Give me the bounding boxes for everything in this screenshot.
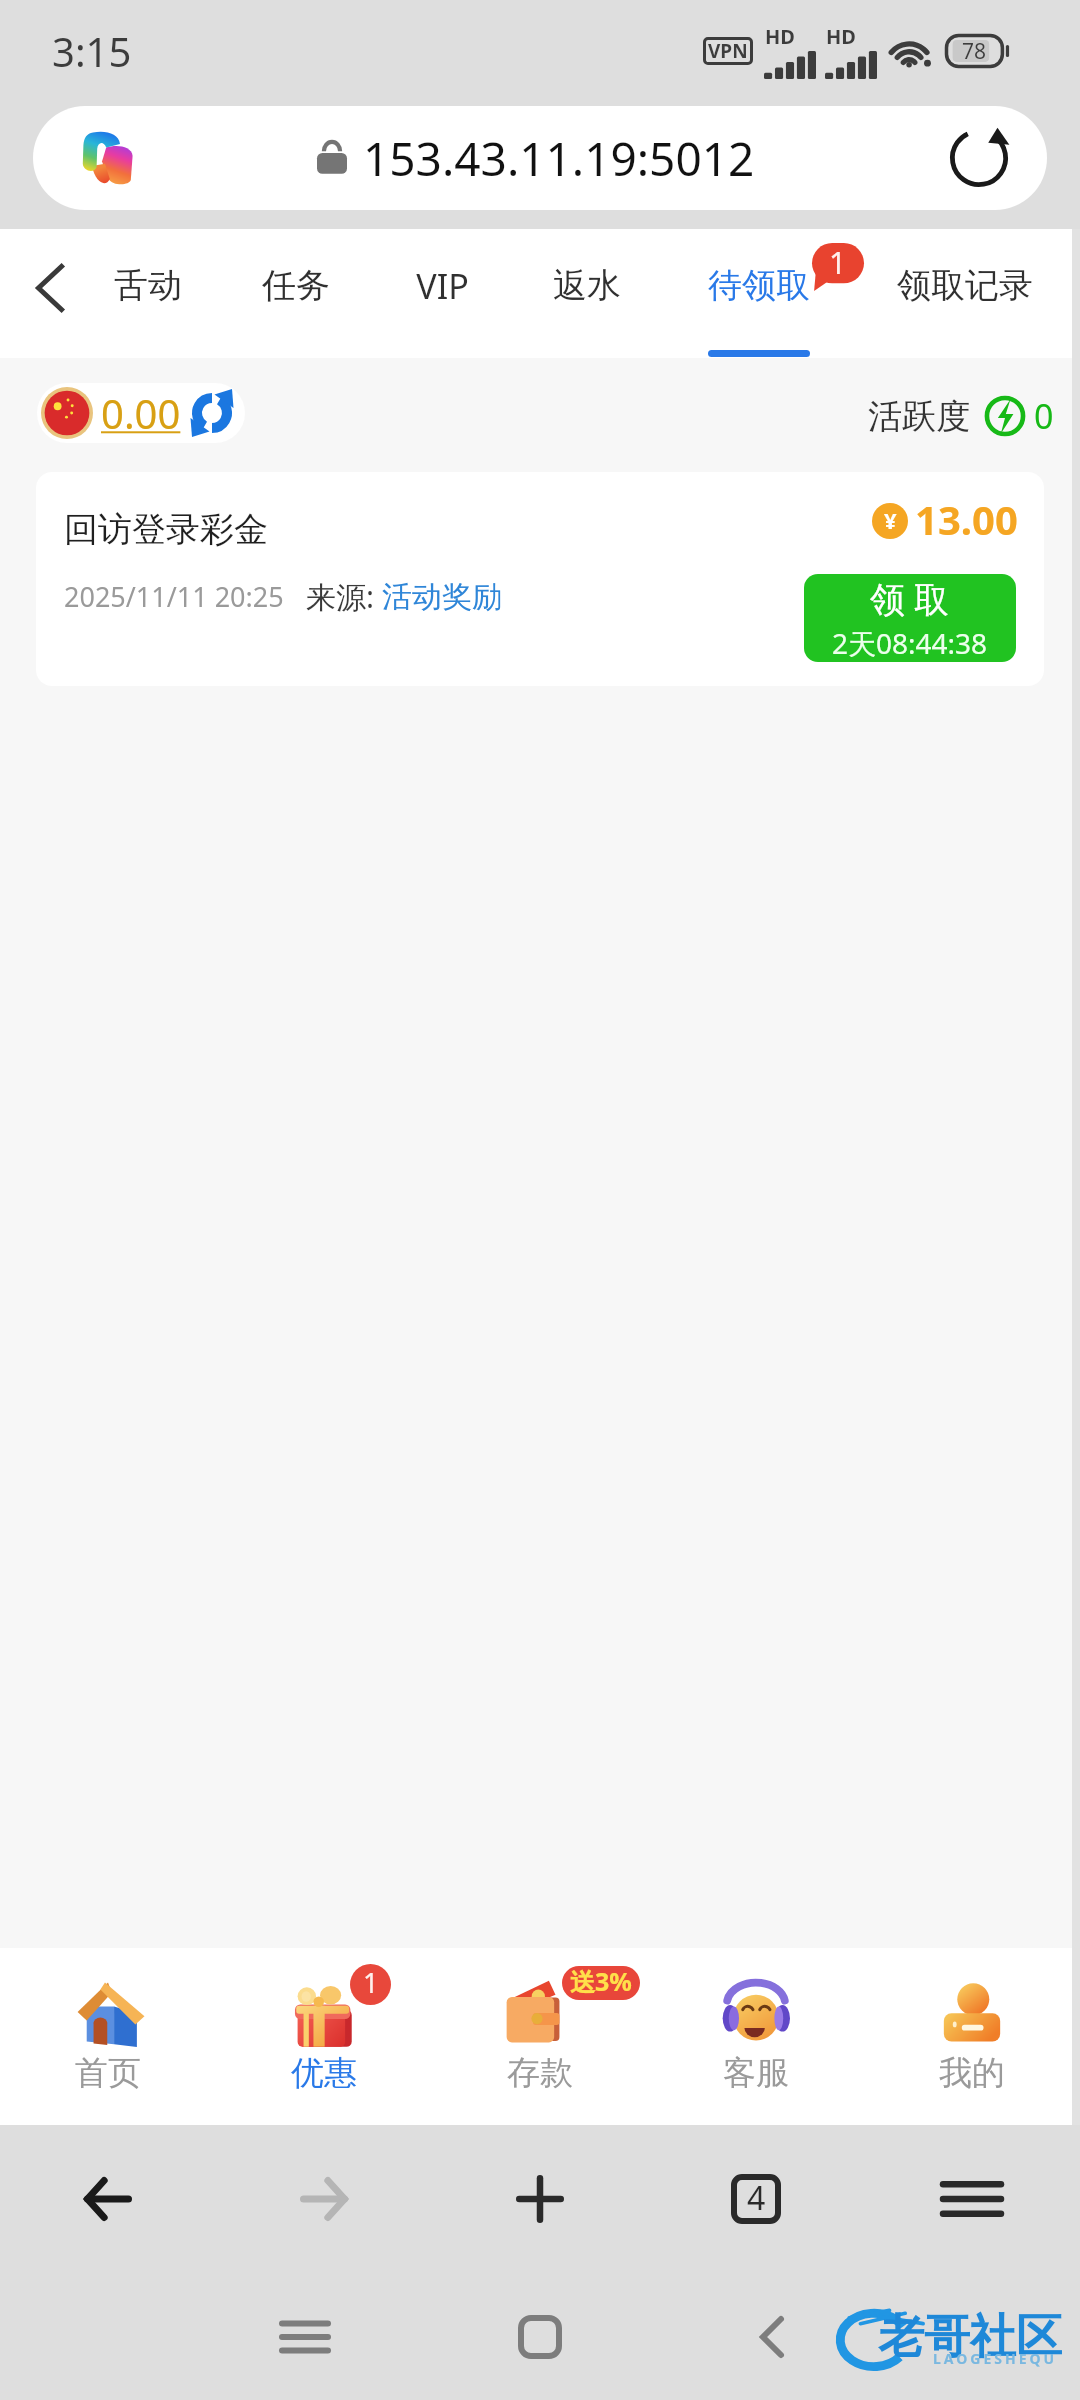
staticText: 2025/11/11 20:25	[64, 578, 284, 615]
button[interactable]: 我的	[864, 1948, 1080, 2125]
staticText: 1	[829, 242, 847, 283]
staticText: 13.00	[915, 492, 1018, 546]
button[interactable]: 舌动	[93, 229, 203, 358]
staticText: LAOGESHEQU	[933, 2349, 1058, 2368]
staticText: 3:15	[52, 24, 132, 78]
staticText: 客服	[723, 2052, 789, 2094]
button[interactable]: 任务	[241, 229, 351, 358]
button[interactable]: Back	[0, 2125, 216, 2273]
staticText: 来源:	[306, 576, 382, 617]
button[interactable]: Home	[480, 2273, 600, 2400]
staticText: 存款	[507, 2052, 573, 2094]
button[interactable]: Forward	[216, 2125, 432, 2273]
staticText: 舌动	[114, 264, 182, 307]
staticText: 返水	[553, 264, 621, 307]
button[interactable]: Back	[712, 2273, 832, 2400]
staticText: VPN	[708, 38, 748, 64]
staticText: 活动奖励	[382, 578, 502, 616]
staticText: 153.43.11.19:5012	[363, 127, 755, 190]
staticText: 领 取	[870, 575, 950, 623]
staticText: ¥	[884, 505, 897, 535]
staticText: 活跃度	[868, 395, 970, 438]
staticText: 4	[747, 2176, 766, 2220]
staticText: 老哥社区	[878, 2308, 1062, 2366]
staticText: 2天08:44:38	[832, 624, 988, 662]
button[interactable]: 1	[216, 1948, 432, 2125]
button[interactable]: 领取记录	[875, 229, 1055, 358]
button[interactable]: 客服	[648, 1948, 864, 2125]
button[interactable]: 回访登录彩金	[36, 472, 1044, 686]
staticText: 0	[1034, 393, 1054, 439]
button[interactable]: 0.00	[37, 383, 245, 443]
button[interactable]: Menu	[864, 2125, 1080, 2273]
button[interactable]: New tab	[432, 2125, 648, 2273]
staticText: 送3%	[570, 1966, 632, 1998]
staticText: 0.00	[101, 386, 181, 440]
button[interactable]: 领 取	[804, 574, 1016, 662]
staticText: 待领取	[708, 264, 810, 307]
button[interactable]: Recents	[245, 2273, 365, 2400]
button[interactable]: Tabs	[648, 2125, 864, 2273]
button[interactable]: Back	[0, 229, 100, 358]
staticText: 78	[962, 37, 987, 66]
button[interactable]: 153.43.11.19:5012	[33, 106, 1047, 210]
button[interactable]: Reload	[937, 116, 1021, 200]
staticText: 优惠	[291, 2052, 357, 2094]
button[interactable]: 送3%	[432, 1948, 648, 2125]
staticText: 回访登录彩金	[64, 508, 268, 551]
staticText: 任务	[262, 264, 330, 307]
staticText: HD	[765, 23, 795, 50]
button[interactable]: VIP	[377, 229, 507, 358]
staticText: 1	[363, 1964, 379, 2001]
button[interactable]: 返水	[532, 229, 642, 358]
staticText: 首页	[75, 2052, 141, 2094]
staticText: HD	[826, 23, 856, 50]
staticText: VIP	[416, 263, 469, 309]
button[interactable]: 待领取	[694, 229, 824, 358]
staticText: 我的	[939, 2052, 1005, 2094]
staticText: 领取记录	[897, 264, 1033, 307]
button[interactable]: 首页	[0, 1948, 216, 2125]
